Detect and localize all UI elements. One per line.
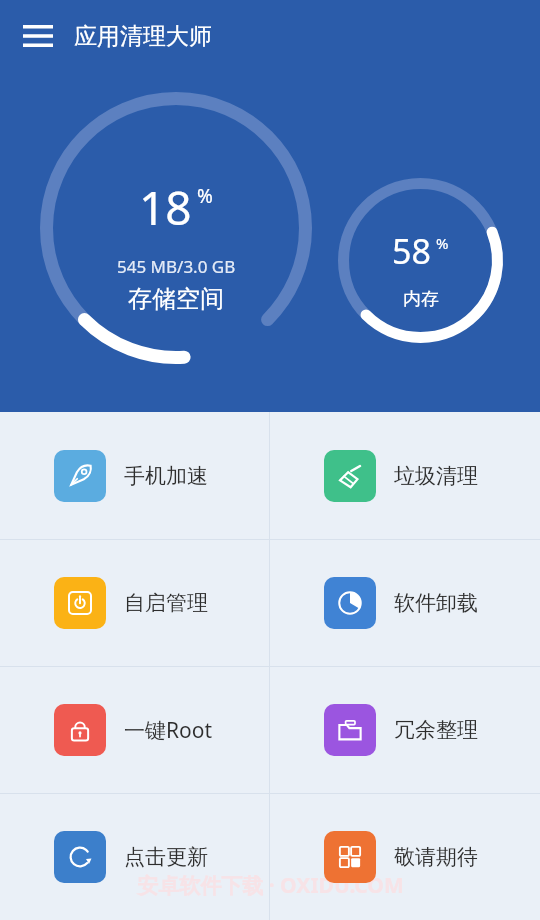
button[interactable]: 自启管理 <box>0 540 269 666</box>
staticText: 手机加速 <box>124 463 208 489</box>
staticText: 58 <box>392 228 431 274</box>
button[interactable]: 点击更新 <box>0 794 269 920</box>
staticText: % <box>436 233 449 253</box>
staticText: 一键Root <box>124 716 213 745</box>
staticText: 点击更新 <box>124 844 208 870</box>
button[interactable]: 手机加速 <box>0 412 269 539</box>
button[interactable]: Menu <box>14 12 62 60</box>
button[interactable]: 冗余整理 <box>270 667 540 793</box>
button[interactable]: 敬请期待 <box>270 794 540 920</box>
staticText: 安卓软件下载 · OXIDU.COM <box>137 871 404 900</box>
staticText: 冗余整理 <box>394 717 478 743</box>
staticText: 18 <box>139 176 192 239</box>
staticText: 545 MB/3.0 GB <box>117 255 236 278</box>
staticText: 内存 <box>403 288 439 311</box>
staticText: 应用清理大师 <box>74 22 212 51</box>
button[interactable]: 软件卸载 <box>270 540 540 666</box>
staticText: % <box>197 183 213 209</box>
staticText: 存储空间 <box>128 284 224 314</box>
button[interactable]: 一键Root <box>0 667 269 793</box>
staticText: 软件卸载 <box>394 590 478 616</box>
staticText: 敬请期待 <box>394 844 478 870</box>
staticText: 垃圾清理 <box>394 463 478 489</box>
staticText: 自启管理 <box>124 590 208 616</box>
button[interactable]: 垃圾清理 <box>270 412 540 539</box>
